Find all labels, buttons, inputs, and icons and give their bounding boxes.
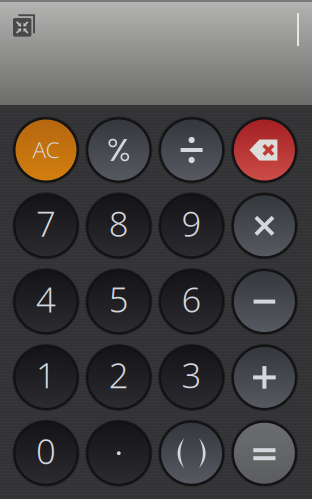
button[interactable]: 9	[156, 190, 228, 262]
button[interactable]: 1	[10, 341, 82, 413]
button[interactable]: 2	[83, 341, 155, 413]
staticText: 6	[182, 276, 202, 322]
staticText: 1	[36, 352, 56, 398]
staticText: 7	[36, 200, 56, 246]
staticText: AC	[32, 134, 59, 164]
button[interactable]: Multiply	[228, 190, 300, 262]
button[interactable]: Parentheses	[156, 417, 228, 489]
staticText: 3	[182, 352, 202, 398]
button[interactable]: Decimal point	[83, 417, 155, 489]
button[interactable]: 8	[83, 190, 155, 262]
staticText: 4	[36, 276, 56, 322]
staticText: 9	[182, 200, 202, 246]
staticText: 5	[109, 276, 129, 322]
button[interactable]: Equals	[228, 417, 300, 489]
button[interactable]: Minus	[228, 266, 300, 338]
button[interactable]: Plus	[228, 341, 300, 413]
button[interactable]: 6	[156, 266, 228, 338]
staticText: 2	[109, 352, 129, 398]
button[interactable]: Divide	[156, 114, 228, 186]
button[interactable]: 5	[83, 266, 155, 338]
button[interactable]: 3	[156, 341, 228, 413]
button[interactable]: All clear	[10, 114, 82, 186]
staticText: 0	[36, 428, 56, 474]
staticText: 8	[109, 200, 129, 246]
button[interactable]: Percent	[83, 114, 155, 186]
button[interactable]: 0	[10, 417, 82, 489]
button[interactable]: 4	[10, 266, 82, 338]
button[interactable]: Delete	[228, 114, 300, 186]
button[interactable]: 7	[10, 190, 82, 262]
